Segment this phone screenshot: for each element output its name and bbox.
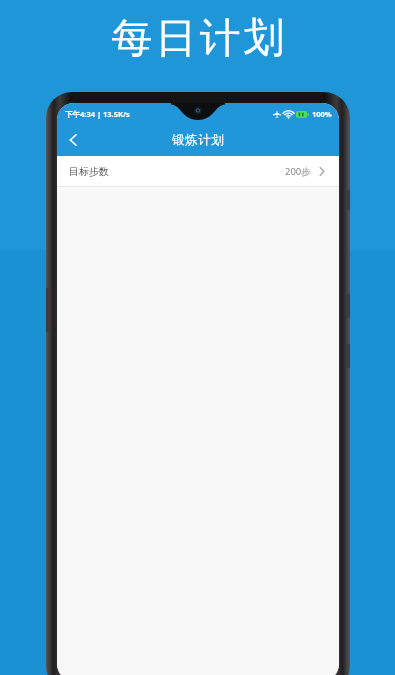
staticText: 100% [312, 109, 332, 119]
staticText: 200步 [285, 165, 311, 178]
staticText: 下午4:34 | 13.5K/s [65, 109, 130, 119]
button[interactable]: 目标步数 [57, 156, 339, 186]
staticText: 锻炼计划 [172, 132, 225, 148]
button[interactable]: Back [57, 124, 91, 156]
staticText: 目标步数 [69, 165, 109, 178]
staticText: 每日计划 [110, 13, 286, 65]
